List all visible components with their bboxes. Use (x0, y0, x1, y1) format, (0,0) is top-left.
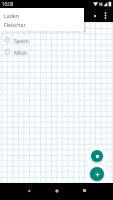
staticText: Speck (14, 37, 29, 44)
button[interactable]: Share list (88, 9, 101, 22)
button[interactable]: Stop (91, 150, 103, 162)
button[interactable]: Recent apps (77, 183, 92, 200)
staticText: Laden (4, 12, 19, 19)
staticText: 10:00 (2, 1, 14, 7)
button[interactable]: Speck (0, 34, 113, 46)
button[interactable]: Fleischer (0, 20, 84, 29)
button[interactable]: Milch (0, 46, 113, 58)
button[interactable]: Add item (90, 167, 104, 181)
staticText: Milch (14, 49, 28, 56)
staticText: Fleischer (4, 21, 26, 28)
button[interactable]: More options (99, 9, 112, 22)
button[interactable]: Laden (0, 10, 84, 20)
button[interactable]: Home (49, 183, 64, 200)
button[interactable]: Back (21, 183, 36, 200)
